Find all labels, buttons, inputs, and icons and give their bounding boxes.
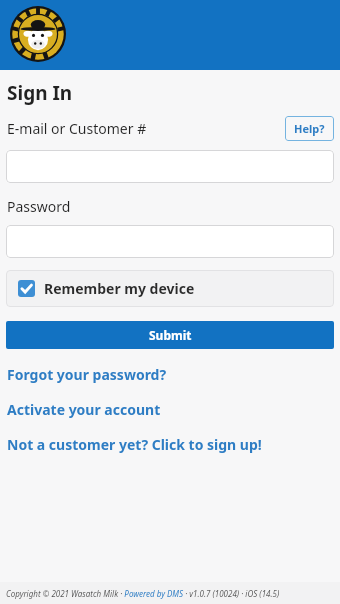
button[interactable]: Not a customer yet? Click to sign up!	[0, 435, 340, 454]
button[interactable]: Wasatch Milk logo	[10, 6, 66, 62]
staticText: Copyright © 2021 Wasatch Milk · Powered …	[6, 588, 280, 599]
staticText: Activate your account	[7, 400, 161, 419]
staticText: Help?	[294, 121, 325, 136]
staticText: Password	[7, 197, 71, 216]
staticText: Not a customer yet? Click to sign up!	[7, 435, 262, 454]
button[interactable]: Help?	[285, 116, 334, 141]
staticText: Remember my device	[44, 279, 195, 298]
staticText: Sign In	[7, 80, 73, 106]
button[interactable]: Activate your account	[0, 400, 340, 419]
button[interactable]	[6, 225, 334, 258]
staticText: Forgot your password?	[7, 365, 167, 384]
staticText: Submit	[149, 327, 192, 343]
button[interactable]: Forgot your password?	[0, 365, 340, 384]
staticText: E-mail or Customer #	[7, 119, 147, 138]
button[interactable]: Submit	[6, 321, 334, 349]
button[interactable]: Remember my device	[6, 270, 334, 307]
button[interactable]	[6, 150, 334, 183]
